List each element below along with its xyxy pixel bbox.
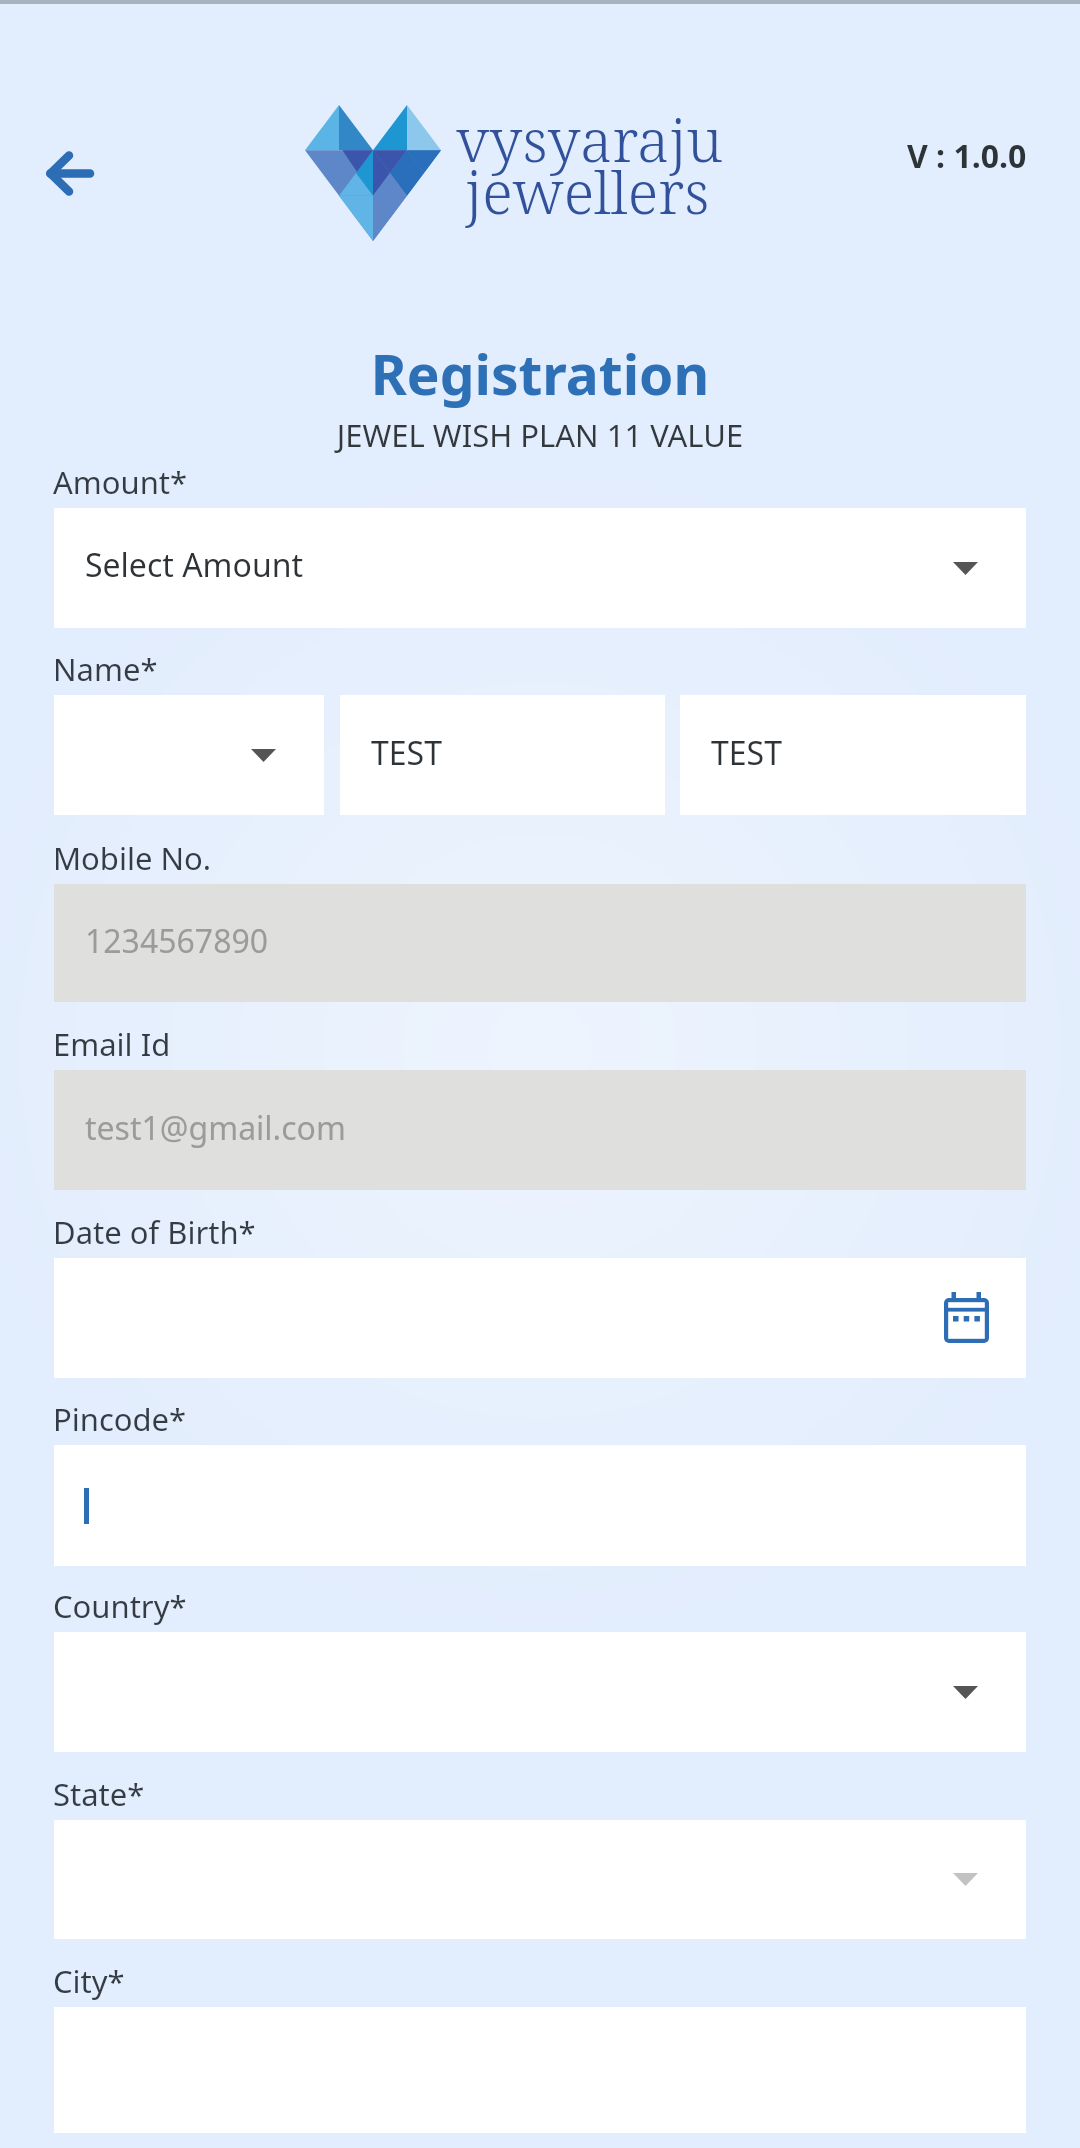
staticText: TEST [371,731,442,775]
staticText: test1@gmail.com [85,1106,346,1150]
button[interactable]: Select Amount [54,508,1026,628]
staticText: Date of Birth* [53,1211,256,1253]
staticText: Email Id [53,1023,171,1065]
button[interactable]: TEST [340,695,665,815]
staticText: V : 1.0.0 [907,134,1027,178]
staticText: Amount* [53,461,188,503]
staticText: TEST [711,731,782,775]
staticText: Select Amount [85,543,303,587]
button[interactable]: Country, select [54,1632,1026,1752]
button[interactable]: Select title [54,695,324,815]
button[interactable]: Pincode [54,1445,1026,1566]
staticText: Mobile No. [53,837,212,879]
staticText: vysyaraju [456,99,723,179]
button[interactable]: Date of Birth, pick a date [54,1258,1026,1378]
button[interactable]: 1234567890 [54,884,1026,1002]
button[interactable]: TEST [680,695,1026,815]
button[interactable]: Back [24,127,116,219]
staticText: City* [53,1960,125,2002]
staticText: jewellers [465,151,710,231]
staticText: Name* [53,648,158,690]
staticText: Registration [0,336,1080,411]
staticText: Pincode* [53,1398,187,1440]
staticText: State* [53,1773,145,1815]
button[interactable]: test1@gmail.com [54,1070,1026,1190]
staticText: JEWEL WISH PLAN 11 VALUE [0,414,1080,456]
staticText: 1234567890 [85,919,269,963]
staticText: Country* [53,1585,187,1627]
